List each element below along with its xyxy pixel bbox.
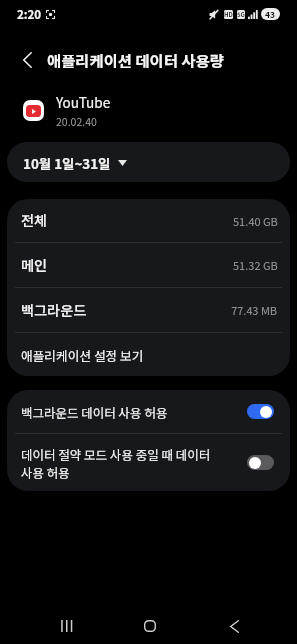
button[interactable]: Back <box>215 608 253 644</box>
button[interactable]: Off <box>247 455 274 470</box>
button[interactable]: Recent apps <box>47 608 85 644</box>
button[interactable]: 전체 <box>7 199 290 242</box>
staticText: 애플리케이션 데이터 사용량 <box>47 49 224 71</box>
staticText: 43 <box>265 8 276 20</box>
button[interactable]: Back <box>13 46 41 74</box>
button[interactable]: 애플리케이션 설정 보기 <box>7 333 290 376</box>
button[interactable]: On <box>247 404 274 419</box>
staticText: 77.43 MB <box>231 302 278 318</box>
staticText: 5G <box>237 10 245 19</box>
staticText: 10월 1일~31일 <box>23 153 111 172</box>
button[interactable]: 백그라운드 데이터 사용 허용 <box>7 390 290 433</box>
staticText: 전체 <box>21 210 48 231</box>
staticText: YouTube <box>56 92 111 112</box>
staticText: HD <box>224 10 233 19</box>
button[interactable]: 백그라운드 <box>7 288 290 332</box>
button[interactable]: 메인 <box>7 243 290 287</box>
button[interactable]: Home <box>131 608 169 644</box>
staticText: 백그라운드 데이터 사용 허용 <box>21 403 168 421</box>
staticText: 애플리케이션 설정 보기 <box>21 346 144 364</box>
staticText: 데이터 절약 모드 사용 중일 때 데이터 사용 허용 <box>21 445 211 481</box>
staticText: 2:20 <box>17 6 42 23</box>
staticText: 메인 <box>21 255 48 276</box>
button[interactable]: 10월 1일~31일 <box>7 142 290 182</box>
staticText: 백그라운드 <box>21 300 87 321</box>
button[interactable]: 데이터 절약 모드 사용 중일 때 데이터 사용 허용 <box>7 434 290 491</box>
staticText: 51.40 GB <box>233 213 278 229</box>
staticText: 51.32 GB <box>233 257 278 273</box>
staticText: 20.02.40 <box>56 114 97 129</box>
